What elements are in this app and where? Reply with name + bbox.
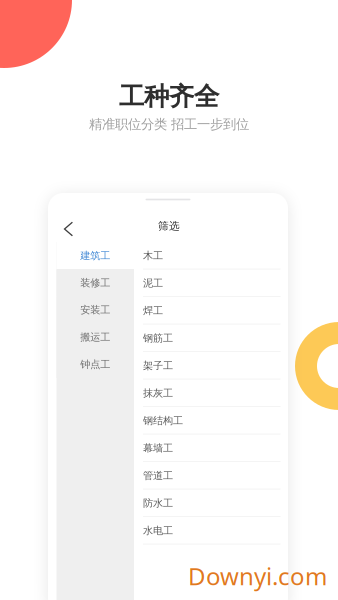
button[interactable]: 建筑工 — [56, 242, 134, 269]
staticText: 工种齐全 — [119, 81, 219, 112]
button[interactable]: 钟点工 — [56, 351, 134, 378]
button[interactable]: 防水工 — [134, 489, 280, 517]
staticText: Downyi.com — [188, 560, 327, 592]
button[interactable]: 泥工 — [134, 269, 280, 297]
staticText: 钟点工 — [80, 358, 110, 371]
staticText: 幕墙工 — [143, 442, 173, 455]
staticText: 搬运工 — [80, 331, 110, 344]
staticText: 防水工 — [143, 497, 173, 510]
staticText: 焊工 — [143, 304, 163, 317]
button[interactable]: 管道工 — [134, 462, 280, 489]
staticText: 钢筋工 — [143, 332, 173, 345]
button[interactable]: 抹灰工 — [134, 379, 280, 407]
staticText: 筛选 — [158, 219, 180, 232]
button[interactable]: 焊工 — [134, 297, 280, 324]
staticText: 安装工 — [80, 304, 110, 316]
staticText: 抹灰工 — [143, 387, 173, 400]
button[interactable]: 搬运工 — [56, 324, 134, 351]
button[interactable]: 装修工 — [56, 269, 134, 296]
staticText: 泥工 — [143, 277, 163, 290]
staticText: 架子工 — [143, 359, 173, 372]
staticText: 装修工 — [80, 276, 110, 289]
button[interactable]: 钢筋工 — [134, 324, 280, 352]
button[interactable]: 架子工 — [134, 352, 280, 379]
button[interactable]: 水电工 — [134, 517, 280, 544]
staticText: 木工 — [143, 249, 163, 262]
staticText: 钢结构工 — [143, 414, 183, 427]
button[interactable]: 返回 — [48, 207, 89, 241]
button[interactable]: 安装工 — [56, 296, 134, 324]
staticText: 精准职位分类 招工一步到位 — [89, 116, 249, 132]
staticText: 建筑工 — [80, 249, 110, 262]
staticText: 管道工 — [143, 469, 173, 482]
staticText: 水电工 — [143, 524, 173, 537]
button[interactable]: 钢结构工 — [134, 407, 280, 434]
button[interactable]: 幕墙工 — [134, 434, 280, 462]
button[interactable]: 木工 — [134, 242, 280, 269]
